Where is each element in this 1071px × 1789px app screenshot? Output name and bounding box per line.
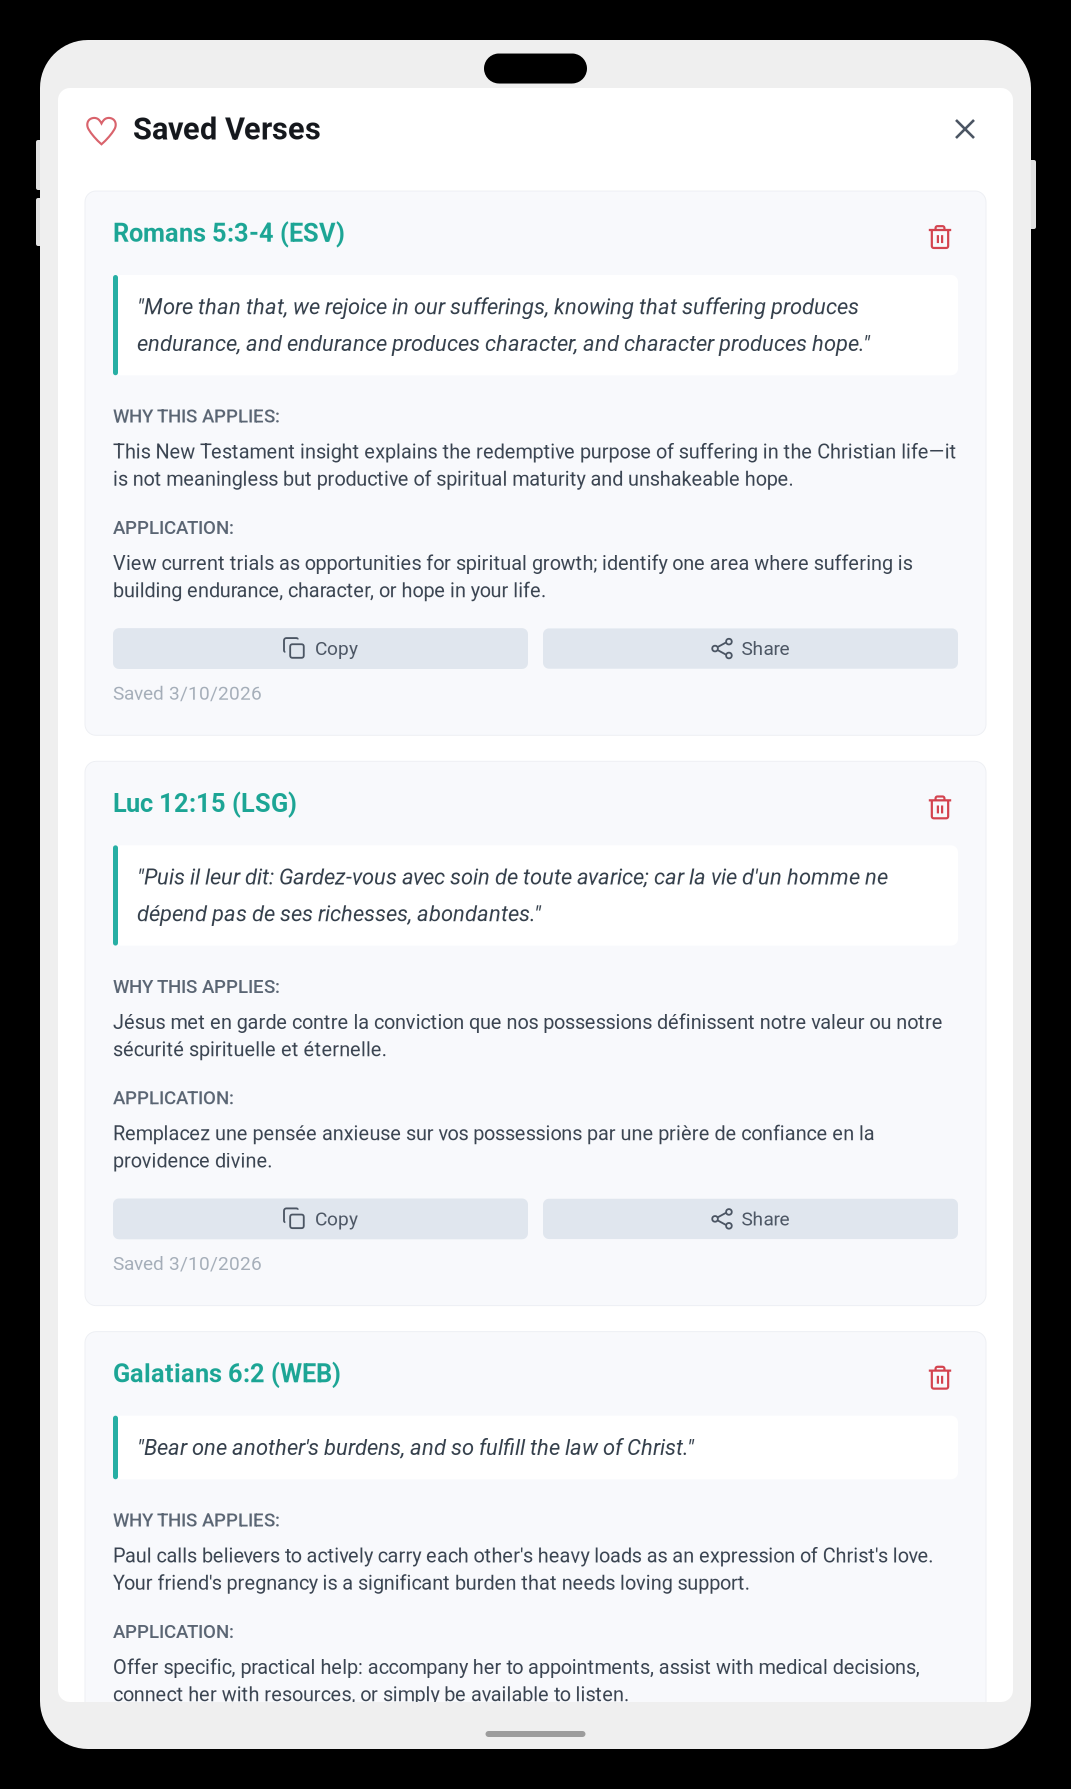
staticText: Saved Verses	[133, 111, 321, 147]
button[interactable]: Copy	[113, 628, 528, 669]
button[interactable]: Copy	[113, 1198, 528, 1239]
button[interactable]: Delete saved verse	[918, 1358, 958, 1390]
button[interactable]: Share	[543, 1199, 958, 1239]
button[interactable]: Share	[543, 628, 958, 669]
staticText: "Bear one another's burdens, and so fulf…	[137, 1435, 694, 1460]
staticText: WHY THIS APPLIES:	[113, 1509, 280, 1531]
staticText: Romans 5:3-4 (ESV)	[113, 218, 345, 248]
staticText: "Puis il leur dit: Gardez-vous avec soin…	[137, 864, 888, 927]
button[interactable]: Share	[543, 1732, 958, 1773]
button[interactable]: Delete saved verse	[918, 787, 958, 819]
staticText: "More than that, we rejoice in our suffe…	[137, 294, 870, 356]
staticText: Galatians 6:2 (WEB)	[113, 1359, 341, 1388]
staticText: Saved 3/10/2026	[113, 1252, 262, 1275]
button[interactable]: Copy	[113, 1732, 528, 1773]
staticText: Saved 3/10/2026	[113, 682, 262, 704]
staticText: Copy	[315, 1741, 358, 1764]
staticText: Share	[741, 1741, 789, 1764]
staticText: APPLICATION:	[113, 1087, 234, 1109]
staticText: Share	[741, 637, 789, 660]
staticText: APPLICATION:	[113, 1621, 234, 1643]
staticText: Copy	[315, 1208, 358, 1230]
staticText: Share	[741, 1208, 789, 1230]
staticText: Paul calls believers to actively carry e…	[113, 1544, 933, 1595]
button[interactable]: Close saved verses	[945, 109, 985, 149]
staticText: Luc 12:15 (LSG)	[113, 788, 297, 818]
staticText: Copy	[315, 637, 358, 660]
staticText: WHY THIS APPLIES:	[113, 405, 280, 427]
staticText: This New Testament insight explains the …	[113, 440, 956, 491]
staticText: APPLICATION:	[113, 517, 234, 539]
staticText: View current trials as opportunities for…	[113, 552, 913, 602]
staticText: Jésus met en garde contre la conviction …	[113, 1010, 943, 1061]
staticText: WHY THIS APPLIES:	[113, 976, 280, 997]
button[interactable]: Delete saved verse	[918, 217, 958, 249]
staticText: Remplacez une pensée anxieuse sur vos po…	[113, 1122, 875, 1172]
staticText: Offer specific, practical help: accompan…	[113, 1656, 920, 1706]
